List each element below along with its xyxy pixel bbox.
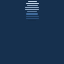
button[interactable]: Primary action	[26, 13, 38, 15]
button[interactable]: Title	[2, 1, 62, 6]
button[interactable]: Details	[2, 7, 62, 12]
button[interactable]: More	[2, 16, 62, 21]
